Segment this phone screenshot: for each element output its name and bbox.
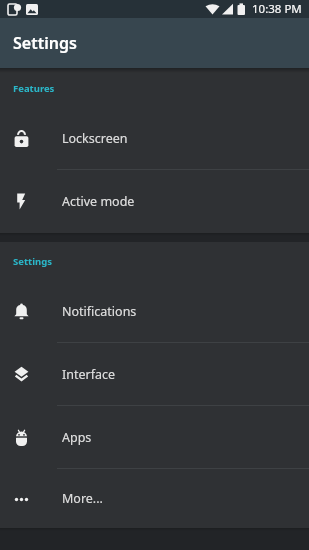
staticText: Apps xyxy=(62,429,92,446)
button[interactable]: Notifications xyxy=(0,280,309,342)
staticText: Active mode xyxy=(62,193,135,210)
staticText: Lockscreen xyxy=(62,130,128,147)
staticText: More... xyxy=(62,490,103,507)
staticText: Notifications xyxy=(62,303,137,320)
button[interactable]: Interface xyxy=(0,343,309,405)
button[interactable]: Active mode xyxy=(0,170,309,233)
staticText: Settings xyxy=(13,32,77,54)
button[interactable]: Apps xyxy=(0,406,309,468)
staticText: Features xyxy=(13,82,55,95)
staticText: Interface xyxy=(62,366,116,383)
button[interactable]: More... xyxy=(0,469,309,528)
staticText: Settings xyxy=(13,255,52,268)
staticText: 10:38 PM xyxy=(252,1,302,17)
button[interactable]: Lockscreen xyxy=(0,107,309,169)
